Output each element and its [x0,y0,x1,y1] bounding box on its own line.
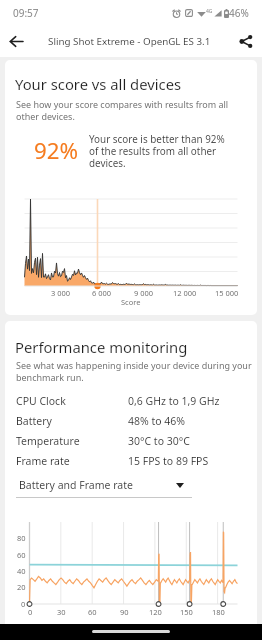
staticText: Your score vs all devices [15,74,182,94]
staticText: 30 [57,607,66,617]
staticText: 80 [17,533,26,543]
staticText: 6 000 [92,288,112,298]
staticText: Your score is better than 92% of the res… [89,132,235,170]
staticText: 0 [28,607,33,617]
staticText: 09:57 [13,6,39,20]
button[interactable]: Share [230,26,262,57]
staticText: 48% to 46% [128,414,186,428]
staticText: 4G [206,8,213,15]
staticText: 40 [17,566,26,576]
staticText: 90 [120,607,129,617]
staticText: 92% [34,135,79,165]
staticText: 46% [229,6,249,20]
staticText: 20 [17,582,26,592]
staticText: 180 [212,607,225,617]
staticText: Score [121,297,141,307]
staticText: 0 [21,599,26,609]
staticText: CPU Clock [16,394,66,408]
staticText: 120 [149,607,162,617]
staticText: Performance monitoring [15,337,188,357]
staticText: 0,6 GHz to 1,9 GHz [128,394,220,408]
staticText: 60 [88,607,97,617]
staticText: Sling Shot Extreme - OpenGL ES 3.1 [48,35,211,48]
staticText: 150 [180,607,193,617]
staticText: 9 000 [134,288,154,298]
staticText: Battery and Frame rate [19,478,184,492]
staticText: 12 000 [173,288,197,298]
staticText: 3 000 [51,288,71,298]
button[interactable]: Back [0,26,32,57]
staticText: Frame rate [16,454,70,468]
staticText: Temperature [16,434,80,448]
staticText: 15 000 [215,288,239,298]
button[interactable]: Battery and Frame rate [16,478,192,498]
staticText: Battery [16,414,52,428]
staticText: 30°C to 30°C [128,434,190,448]
staticText: See what was happening inside your devic… [16,359,257,383]
staticText: 15 FPS to 89 FPS [128,454,209,468]
staticText: See how your score compares with results… [16,98,232,122]
staticText: 60 [17,550,26,560]
